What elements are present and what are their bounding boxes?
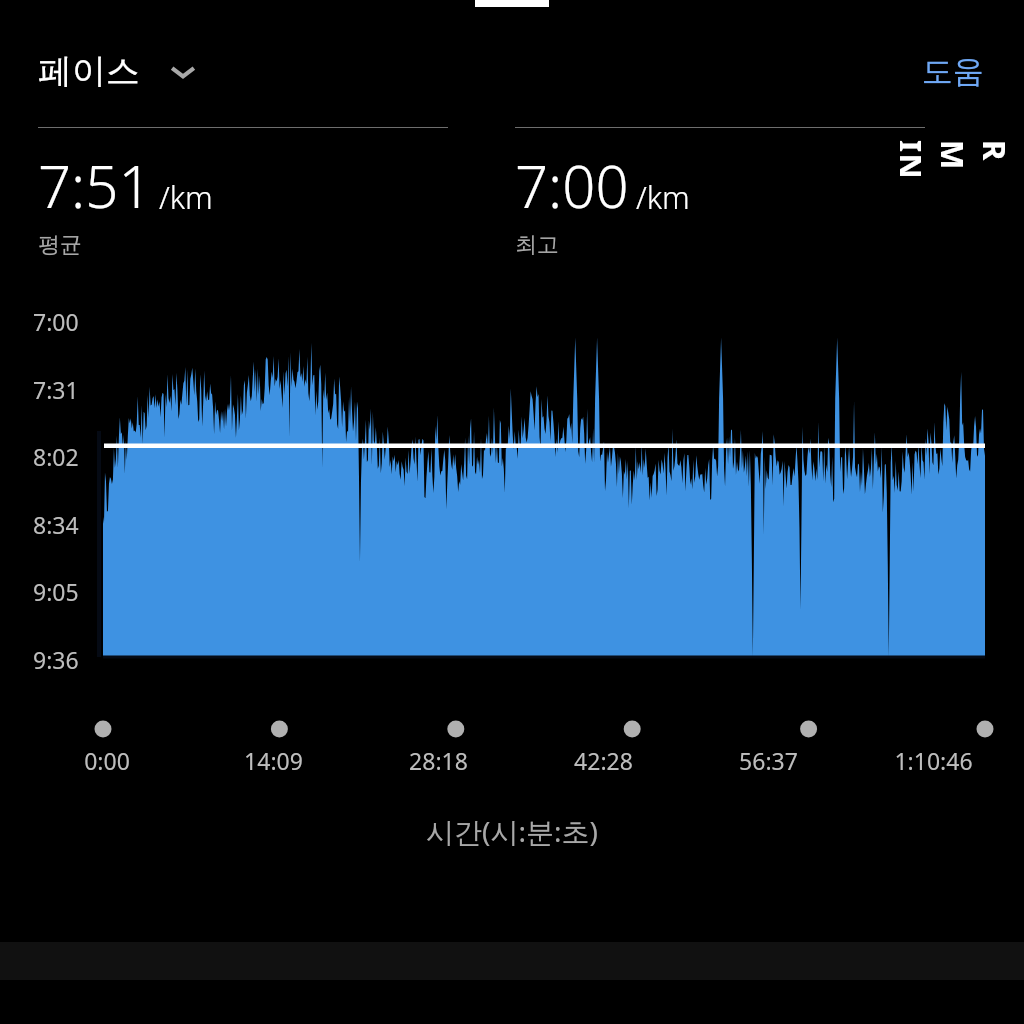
staticText: 42:28 [574,745,633,776]
staticText: /km [159,176,213,218]
staticText: 8:34 [33,509,79,540]
staticText: 평균 [38,231,82,259]
staticText: 7:00 [515,146,629,225]
staticText: 14:09 [244,745,303,776]
staticText: 페이스 [38,50,140,93]
staticText: 시간(시:분:초) [426,812,598,850]
staticText: GARMIN® [900,140,1024,184]
staticText: 도움 [922,52,984,91]
staticText: /km [636,176,690,218]
staticText: 56:37 [739,745,798,776]
other: Change metric [166,60,200,84]
staticText: 1:10:46 [894,745,973,776]
staticText: 28:18 [409,745,468,776]
staticText: 0:00 [84,745,130,776]
staticText: 8:02 [33,441,79,472]
staticText: 최고 [515,231,559,259]
staticText: 7:31 [33,374,79,405]
staticText: 7:00 [33,306,79,337]
staticText: 9:36 [33,644,79,675]
button[interactable]: 페이스 [38,50,206,93]
button[interactable]: 도움 [946,48,1016,95]
staticText: 7:51 [38,146,152,225]
staticText: 9:05 [33,576,79,607]
